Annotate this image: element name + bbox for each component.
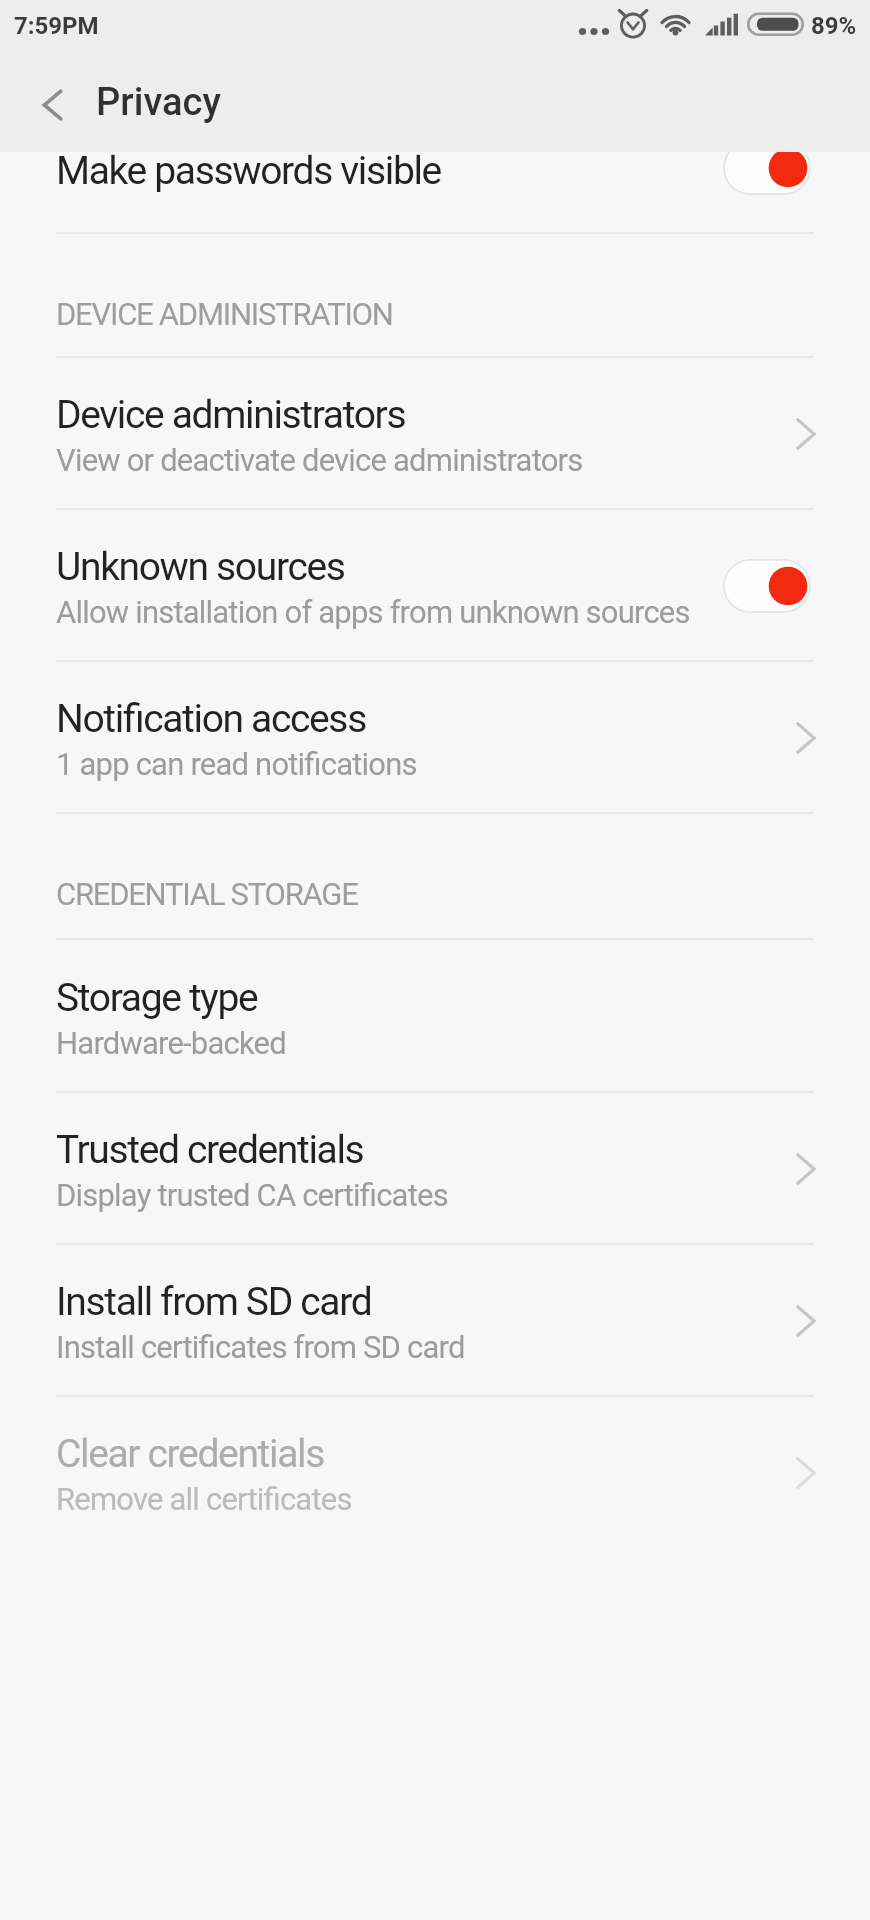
staticText: Clear credentials	[56, 1431, 324, 1477]
staticText: Install from SD card	[56, 1279, 372, 1325]
staticText: Install certificates from SD card	[56, 1329, 465, 1365]
button[interactable]: Trusted credentials	[0, 1093, 870, 1245]
staticText: Remove all certificates	[56, 1481, 352, 1517]
staticText: Notification access	[56, 696, 366, 742]
button[interactable]: Storage type	[0, 940, 870, 1093]
button[interactable]: Toggle switch	[723, 559, 811, 613]
staticText: Make passwords visible	[56, 152, 441, 194]
staticText: Allow installation of apps from unknown …	[56, 594, 690, 630]
staticText: 89%	[811, 12, 857, 40]
staticText: Device administrators	[56, 392, 406, 438]
button[interactable]: Device administrators	[0, 358, 870, 510]
staticText: View or deactivate device administrators	[56, 442, 583, 478]
button[interactable]: Notification access	[0, 662, 870, 814]
button[interactable]: Make passwords visible	[0, 152, 870, 234]
staticText: DEVICE ADMINISTRATION	[56, 296, 393, 332]
button[interactable]: Install from SD card	[0, 1245, 870, 1397]
staticText: Hardware-backed	[56, 1025, 286, 1061]
button[interactable]: Navigate back	[24, 76, 76, 128]
staticText: Display trusted CA certificates	[56, 1177, 448, 1213]
staticText: 7:59PM	[14, 12, 99, 40]
staticText: Trusted credentials	[56, 1127, 364, 1173]
staticText: Unknown sources	[56, 544, 345, 590]
staticText: Storage type	[56, 975, 258, 1021]
button[interactable]: Toggle switch	[723, 152, 811, 195]
staticText: 1 app can read notifications	[56, 746, 417, 782]
staticText: CREDENTIAL STORAGE	[56, 876, 358, 912]
button[interactable]: Unknown sources	[0, 510, 870, 662]
staticText: Privacy	[96, 80, 221, 125]
button[interactable]: Clear credentials	[0, 1397, 870, 1549]
